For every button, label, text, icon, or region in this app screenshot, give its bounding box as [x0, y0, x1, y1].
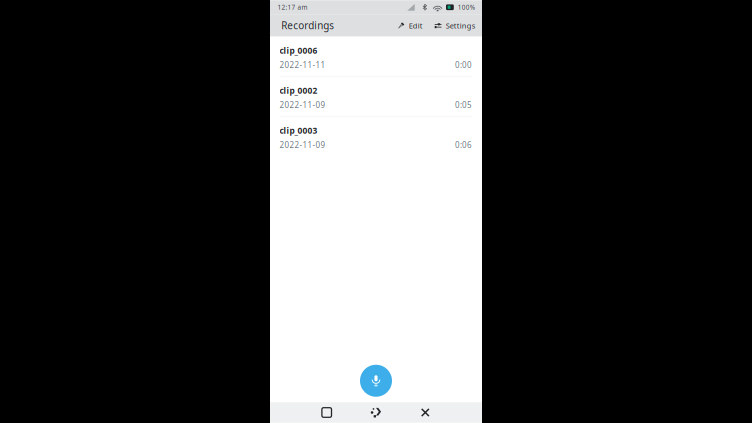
button[interactable]: Edit: [395, 16, 426, 35]
button[interactable]: Record: [360, 365, 392, 397]
staticText: Recordings: [281, 19, 334, 32]
staticText: clip_0006: [279, 45, 317, 56]
staticText: 2022-11-11: [279, 59, 325, 70]
button[interactable]: clip_0006: [270, 37, 482, 76]
button[interactable]: Settings: [432, 16, 479, 35]
button[interactable]: clip_0002: [270, 77, 482, 116]
staticText: 2022-11-09: [279, 139, 325, 150]
staticText: 2022-11-09: [279, 99, 325, 110]
staticText: Settings: [446, 20, 476, 31]
staticText: 0:05: [455, 99, 472, 110]
staticText: 0:00: [455, 59, 472, 70]
staticText: clip_0002: [279, 85, 317, 96]
button[interactable]: Recent apps: [302, 402, 351, 423]
staticText: 100%: [458, 3, 475, 12]
button[interactable]: Home: [351, 402, 401, 423]
staticText: 0:06: [455, 139, 472, 150]
button[interactable]: clip_0003: [270, 117, 482, 156]
staticText: Edit: [409, 20, 423, 31]
staticText: 12:17 am: [277, 3, 307, 12]
staticText: clip_0003: [279, 125, 317, 136]
button[interactable]: Back: [401, 402, 450, 423]
